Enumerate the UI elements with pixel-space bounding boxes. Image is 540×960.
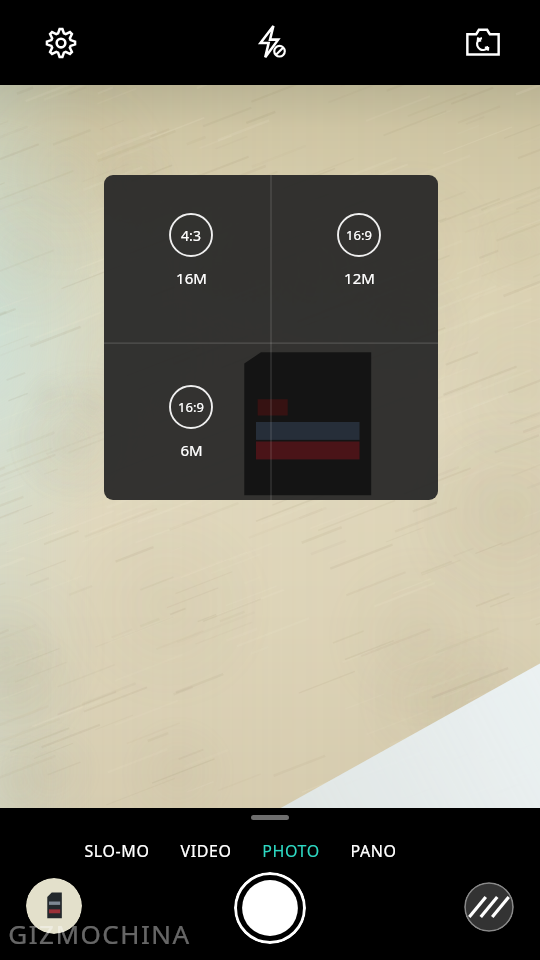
staticText: PHOTO <box>262 840 320 862</box>
button[interactable]: 16:9 <box>162 385 220 460</box>
staticText: PANO <box>350 840 397 862</box>
staticText: 12M <box>344 268 375 288</box>
button[interactable]: Gallery <box>26 878 82 934</box>
button[interactable]: 16:9 <box>330 213 388 288</box>
staticText: 6M <box>180 440 203 460</box>
button[interactable]: Switch camera <box>452 12 514 74</box>
staticText: 4:3 <box>181 226 201 245</box>
button[interactable]: Flash off <box>239 10 301 72</box>
staticText: VIDEO <box>180 840 232 862</box>
button[interactable]: SLO-MO <box>80 834 154 868</box>
staticText: 16:9 <box>346 226 372 244</box>
button[interactable]: PANO <box>346 834 401 868</box>
staticText: SLO-MO <box>84 840 150 862</box>
button[interactable]: Filters <box>464 882 514 932</box>
button[interactable]: Shutter <box>234 872 306 944</box>
staticText: 16:9 <box>178 398 204 416</box>
button[interactable]: VIDEO <box>176 834 236 868</box>
button[interactable]: 4:3 <box>162 213 220 288</box>
staticText: 16M <box>176 268 207 288</box>
button[interactable]: PHOTO <box>258 834 324 868</box>
button[interactable]: Settings <box>30 12 92 74</box>
staticText: GIZMOCHINA <box>8 916 191 951</box>
